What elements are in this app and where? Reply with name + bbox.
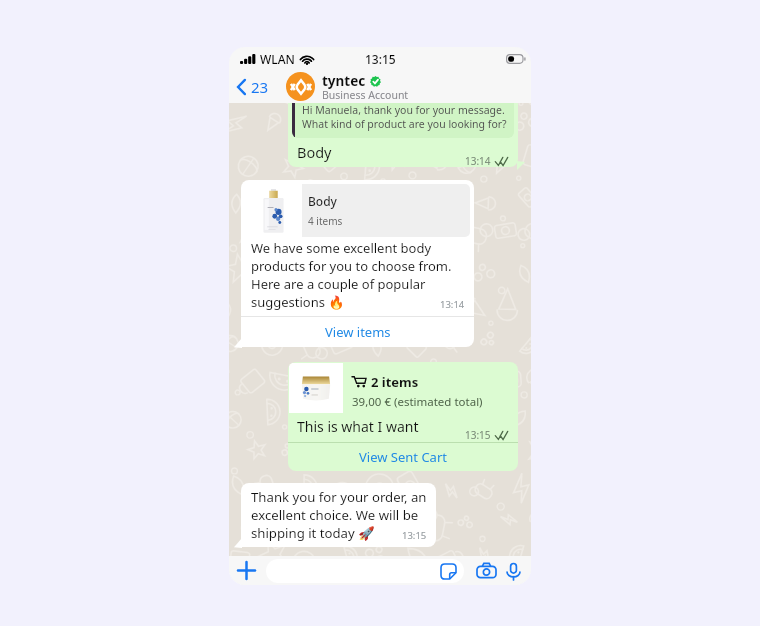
staticText: 39,00 € (estimated total)	[352, 394, 483, 410]
button[interactable]: Attach	[233, 557, 260, 584]
staticText: This is what I want	[297, 417, 419, 436]
staticText: Thank you for your order, an excellent c…	[251, 488, 427, 542]
staticText: Business Account	[322, 88, 409, 102]
staticText: Hi Manuela, thank you for your message. …	[302, 103, 507, 131]
staticText: 13:15	[365, 51, 396, 67]
staticText: 13:14	[440, 298, 465, 311]
other: Stickers	[441, 564, 456, 579]
staticText: 13:15	[402, 529, 427, 542]
staticText: View items	[325, 323, 391, 341]
staticText: 13:15	[465, 428, 491, 442]
button[interactable]: View Sent Cart	[288, 443, 518, 471]
staticText: 4 items	[308, 214, 343, 228]
button[interactable]: Stickers	[266, 559, 464, 583]
staticText: We have some excellent body products for…	[251, 239, 452, 311]
button[interactable]: Voice message	[503, 561, 523, 581]
button[interactable]: View items	[241, 317, 474, 347]
staticText: Body	[297, 142, 332, 162]
staticText: 23	[251, 77, 269, 97]
staticText: 13:14	[465, 154, 491, 167]
button[interactable]: Back, 23 unread chats	[235, 73, 271, 101]
staticText: WLAN	[260, 51, 295, 67]
button[interactable]: Camera	[475, 559, 498, 582]
staticText: View Sent Cart	[359, 448, 447, 466]
staticText: tyntec	[322, 72, 366, 90]
button[interactable]: Thank you for your order, an excellent c…	[241, 483, 436, 547]
staticText: 2 items	[371, 373, 419, 391]
button[interactable]: Hi Manuela, thank you for your message. …	[288, 103, 518, 167]
staticText: Body	[308, 193, 337, 209]
button[interactable]: tyntec profile	[286, 72, 315, 101]
